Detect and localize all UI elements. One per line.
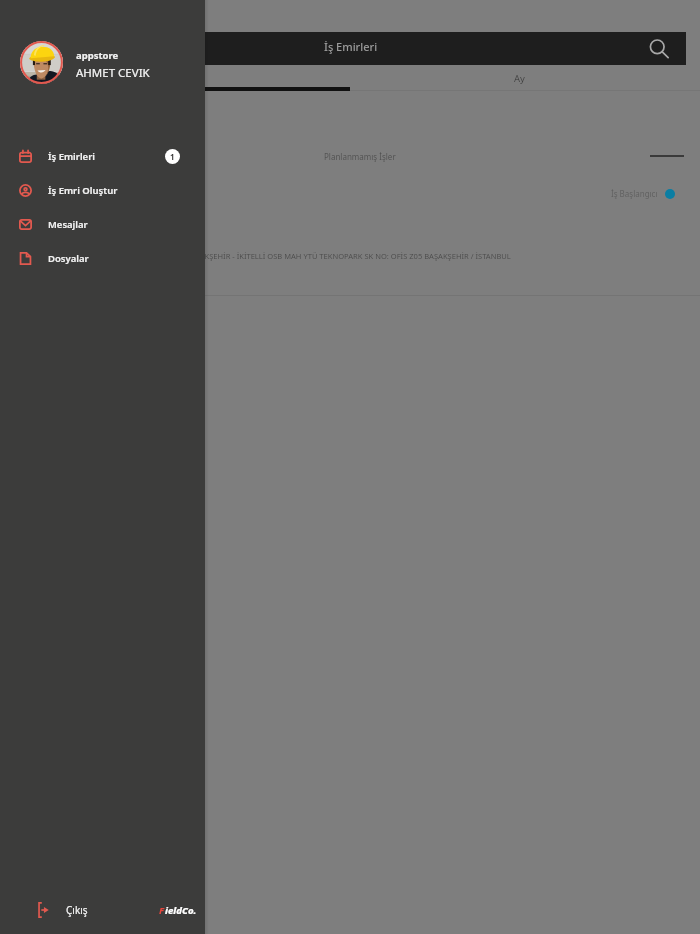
staticText: appstore [76,49,119,62]
button[interactable]: F [159,904,197,917]
staticText: İş Emirleri [48,150,95,163]
staticText: ieldCo. [165,904,197,917]
staticText: İSTANBUL BÜYÜKŞEHİR - İKİTELLİ OSB MAH Y… [147,251,511,261]
staticText: Çıkış [66,903,88,917]
button[interactable]: Hafta [0,65,346,91]
staticText: AHMET CEVIK [76,65,150,81]
button[interactable]: Search [646,36,672,62]
button[interactable]: Ay [346,65,692,91]
staticText: İş Başlangıcı [611,188,658,199]
button[interactable]: Dosyalar [0,241,205,275]
staticText: Ay [514,72,525,85]
button[interactable]: Çıkış [37,902,88,918]
staticText: Mesajlar [48,218,88,231]
button[interactable]: İş Emirleri [0,139,205,173]
button[interactable]: Mesajlar [0,207,205,241]
staticText: 1 [170,151,175,162]
staticText: F [159,904,165,917]
staticText: Dosyalar [48,252,89,265]
staticText: İş Emirleri [324,39,378,54]
button[interactable]: İş Emri Oluştur [0,173,205,207]
staticText: Planlanmamış İşler [324,151,396,162]
staticText: İş Emri Oluştur [48,184,118,197]
button[interactable]: Close navigation drawer [205,0,700,934]
